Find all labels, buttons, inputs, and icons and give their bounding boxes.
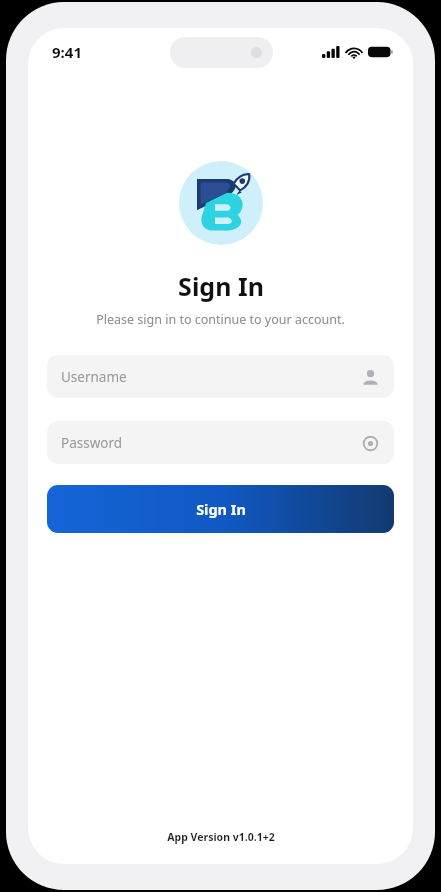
staticText: Sign In <box>196 499 246 519</box>
button[interactable]: Username <box>360 367 380 387</box>
button[interactable]: Show password <box>360 433 380 453</box>
staticText: App Version v1.0.1+2 <box>167 830 275 844</box>
staticText: 9:41 <box>52 42 82 62</box>
staticText: Password <box>61 434 123 452</box>
staticText: Sign In <box>178 269 264 303</box>
button[interactable]: Sign In <box>47 485 394 533</box>
staticText: Please sign in to continue to your accou… <box>96 311 345 328</box>
button[interactable]: Username <box>47 355 394 398</box>
button[interactable]: Password <box>47 421 394 464</box>
staticText: Username <box>61 368 127 386</box>
